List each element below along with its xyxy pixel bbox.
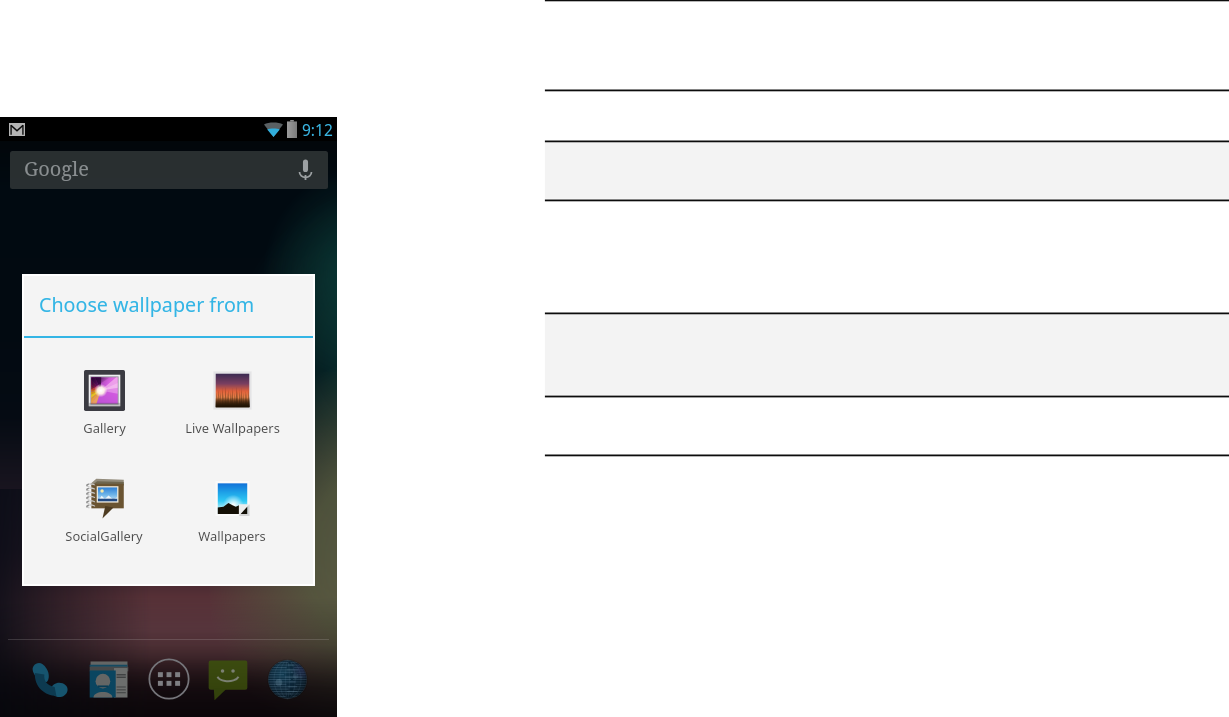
button[interactable]: Contacts [80, 641, 138, 717]
button[interactable]: Live Wallpapers [168, 362, 296, 437]
button[interactable]: Google [10, 151, 328, 189]
button[interactable]: Browser [258, 641, 316, 717]
staticText: Choose wallpaper from [39, 291, 255, 318]
button[interactable]: Wallpapers [168, 470, 296, 545]
button[interactable]: Apps [140, 641, 198, 717]
staticText: Wallpapers [198, 527, 266, 545]
button[interactable]: Phone [20, 641, 78, 717]
staticText: Live Wallpapers [185, 419, 280, 437]
staticText: Google [24, 155, 90, 182]
other: Voice search [298, 159, 313, 180]
staticText: SocialGallery [65, 527, 143, 545]
button[interactable]: SocialGallery [40, 470, 168, 545]
staticText: Gallery [83, 419, 126, 437]
button[interactable]: Messaging [199, 641, 257, 717]
staticText: 9:12 [302, 119, 333, 140]
button[interactable]: Gallery [40, 362, 168, 437]
